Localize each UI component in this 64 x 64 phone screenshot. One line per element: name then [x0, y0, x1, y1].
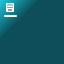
button[interactable]: Action [4, 15, 17, 17]
button[interactable] [6, 3, 14, 12]
